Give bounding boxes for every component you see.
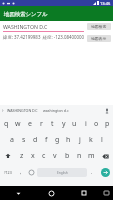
staticText: y bbox=[62, 119, 66, 129]
staticText: . bbox=[91, 169, 93, 176]
button[interactable]: k bbox=[85, 132, 96, 148]
staticText: x bbox=[31, 151, 35, 161]
staticText: h bbox=[66, 135, 71, 145]
staticText: t bbox=[51, 119, 54, 129]
staticText: e bbox=[28, 119, 32, 129]
button[interactable]: g bbox=[52, 132, 63, 148]
staticText: i bbox=[85, 119, 87, 129]
button[interactable]: English bbox=[37, 168, 87, 177]
button[interactable]: c bbox=[38, 148, 49, 164]
staticText: washington d.c bbox=[43, 108, 69, 113]
button[interactable]: 地図検索 bbox=[87, 23, 111, 30]
button[interactable]: z bbox=[16, 148, 27, 164]
button[interactable]: b bbox=[61, 148, 73, 164]
staticText: o bbox=[94, 119, 99, 129]
button[interactable]: , bbox=[16, 164, 26, 180]
button[interactable]: x bbox=[27, 148, 38, 164]
staticText: z bbox=[20, 151, 24, 161]
staticText: 緯度: 37.42199983 経度: -123.08400000 bbox=[3, 34, 84, 40]
staticText: 13:46 bbox=[100, 1, 111, 6]
button[interactable]: j bbox=[74, 132, 85, 148]
button[interactable]: q bbox=[0, 116, 12, 132]
staticText: r bbox=[40, 119, 43, 129]
button[interactable]: Emoji bbox=[26, 164, 37, 180]
button[interactable]: Switch keyboard bbox=[100, 187, 112, 199]
staticText: , bbox=[20, 169, 22, 176]
button[interactable]: Home bbox=[44, 186, 58, 200]
button[interactable]: o bbox=[91, 116, 102, 132]
button[interactable]: Recent apps bbox=[77, 186, 91, 200]
button[interactable]: t bbox=[47, 116, 58, 132]
staticText: WASHINGTON D.C bbox=[3, 23, 48, 30]
button[interactable]: Shift bbox=[0, 148, 16, 164]
staticText: ?123 bbox=[4, 170, 12, 175]
staticText: 地図検索シンプル bbox=[4, 11, 48, 18]
staticText: › bbox=[2, 107, 4, 114]
button[interactable]: a bbox=[6, 132, 18, 148]
button[interactable]: Back bbox=[11, 186, 25, 200]
button[interactable]: p bbox=[102, 116, 113, 132]
button[interactable]: m bbox=[85, 148, 97, 164]
button[interactable]: r bbox=[36, 116, 47, 132]
staticText: a bbox=[10, 135, 14, 145]
staticText: s bbox=[22, 135, 26, 145]
button[interactable]: f bbox=[41, 132, 52, 148]
staticText: v bbox=[53, 151, 57, 161]
button[interactable]: e bbox=[24, 116, 36, 132]
staticText: m bbox=[88, 151, 95, 161]
button[interactable]: y bbox=[58, 116, 69, 132]
button[interactable]: w bbox=[12, 116, 24, 132]
staticText: k bbox=[89, 135, 93, 145]
staticText: g bbox=[55, 135, 60, 145]
button[interactable]: d bbox=[30, 132, 41, 148]
staticText: w bbox=[15, 119, 21, 129]
button[interactable]: i bbox=[80, 116, 91, 132]
button[interactable]: v bbox=[49, 148, 61, 164]
button[interactable]: h bbox=[63, 132, 74, 148]
staticText: b bbox=[65, 151, 70, 161]
staticText: q bbox=[4, 119, 9, 129]
staticText: 地図検索 bbox=[91, 24, 107, 29]
staticText: English bbox=[57, 171, 68, 175]
button[interactable]: Enter bbox=[97, 164, 113, 180]
staticText: d bbox=[33, 135, 38, 145]
staticText: n bbox=[77, 151, 82, 161]
button[interactable]: n bbox=[73, 148, 85, 164]
staticText: f bbox=[45, 135, 48, 145]
button[interactable]: ?123 bbox=[0, 164, 16, 180]
button[interactable]: u bbox=[69, 116, 80, 132]
staticText: c bbox=[42, 151, 46, 161]
button[interactable]: Voice input bbox=[102, 106, 112, 116]
staticText: j bbox=[79, 135, 81, 145]
button[interactable]: Backspace bbox=[97, 148, 113, 164]
button[interactable]: 地図表示 bbox=[87, 35, 111, 42]
button[interactable]: . bbox=[87, 164, 97, 180]
staticText: WASHINGTON D.C bbox=[7, 108, 38, 113]
button[interactable]: s bbox=[18, 132, 30, 148]
staticText: p bbox=[105, 119, 110, 129]
staticText: u bbox=[72, 119, 77, 129]
staticText: 地図表示 bbox=[91, 36, 107, 41]
button[interactable]: l bbox=[96, 132, 107, 148]
button[interactable]: WASHINGTON D.C bbox=[3, 23, 84, 32]
staticText: l bbox=[101, 135, 103, 145]
